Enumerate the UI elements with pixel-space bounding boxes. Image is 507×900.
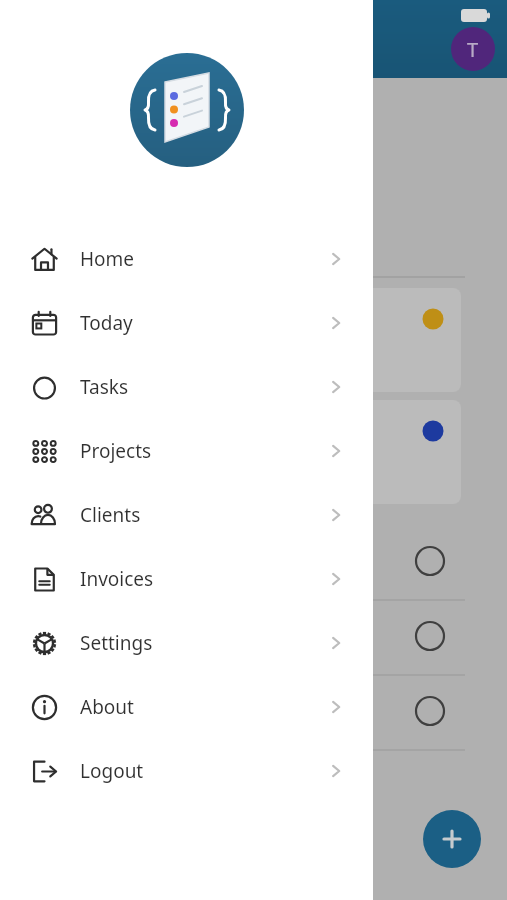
staticText: Home — [80, 246, 135, 272]
button[interactable]: About — [0, 675, 373, 739]
button[interactable]: Add — [423, 810, 481, 868]
button[interactable]: Settings — [0, 611, 373, 675]
button[interactable] — [0, 526, 507, 600]
button[interactable]: Home — [0, 227, 373, 291]
staticText: T — [467, 36, 479, 63]
button[interactable]: Clients — [0, 483, 373, 547]
staticText: Tasks — [80, 374, 129, 400]
button[interactable]: Account — [451, 27, 495, 71]
staticText: Clients — [80, 502, 141, 528]
button[interactable]: Projects — [0, 419, 373, 483]
button[interactable] — [0, 288, 461, 392]
staticText: About — [80, 694, 134, 720]
staticText: Today — [80, 310, 133, 336]
button[interactable] — [0, 676, 507, 750]
button[interactable]: Logout — [0, 739, 373, 803]
button[interactable] — [0, 400, 461, 504]
button[interactable]: Invoices — [0, 547, 373, 611]
staticText: Invoices — [80, 566, 154, 592]
button[interactable]: Tasks — [0, 355, 373, 419]
button[interactable]: Today — [0, 291, 373, 355]
staticText: Logout — [80, 758, 144, 784]
button[interactable] — [0, 601, 507, 675]
staticText: Projects — [80, 438, 152, 464]
staticText: Settings — [80, 630, 153, 656]
